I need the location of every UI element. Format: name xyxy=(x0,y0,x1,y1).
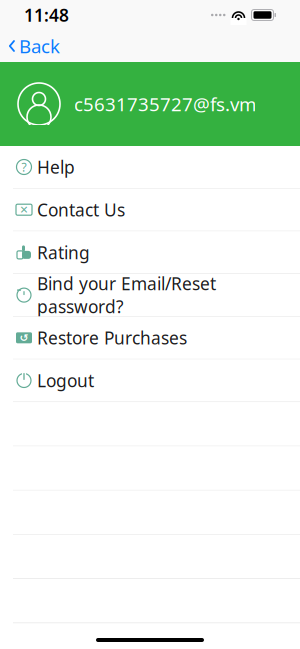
button[interactable]: Rating xyxy=(0,231,300,274)
button[interactable]: ✕ xyxy=(0,189,300,231)
button[interactable]: c5631735727@fs.vm xyxy=(0,62,300,146)
staticText: ✕ xyxy=(19,204,28,216)
staticText: c5631735727@fs.vm xyxy=(74,92,256,116)
staticText: ? xyxy=(21,159,26,175)
button[interactable]: Bind your Email/Reset password? xyxy=(0,274,300,317)
staticText: Help xyxy=(37,155,75,178)
staticText: Rating xyxy=(37,241,90,264)
staticText: ↺ xyxy=(19,332,28,344)
staticText: Restore Purchases xyxy=(37,326,187,349)
button[interactable]: Logout xyxy=(0,359,300,402)
button[interactable]: Back xyxy=(0,30,70,62)
staticText: Back xyxy=(19,34,60,58)
button[interactable]: ? xyxy=(0,146,300,189)
staticText: Bind your Email/Reset password? xyxy=(37,272,216,318)
button[interactable]: ↺ xyxy=(0,317,300,359)
staticText: Contact Us xyxy=(37,198,125,221)
staticText: 11:48 xyxy=(24,3,69,26)
staticText: Logout xyxy=(37,369,94,392)
